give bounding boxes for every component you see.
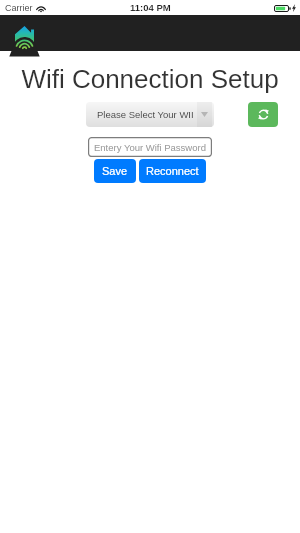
button[interactable]: Save [94,159,136,183]
staticText: Wifi Connection Setup [0,64,300,93]
staticText: Save [102,165,128,177]
staticText: Entery Your Wifi Password [94,142,206,153]
staticText: 11:04 PM [130,2,171,13]
staticText: Reconnect [146,165,199,177]
button[interactable]: Entery Your Wifi Password [88,137,212,157]
button[interactable]: Reconnect [139,159,206,183]
staticText: Please Select Your WII [97,109,194,120]
button[interactable]: Please Select Your WII [86,102,214,127]
button[interactable]: Refresh wifi list [248,102,278,127]
staticText: Carrier [5,3,33,13]
